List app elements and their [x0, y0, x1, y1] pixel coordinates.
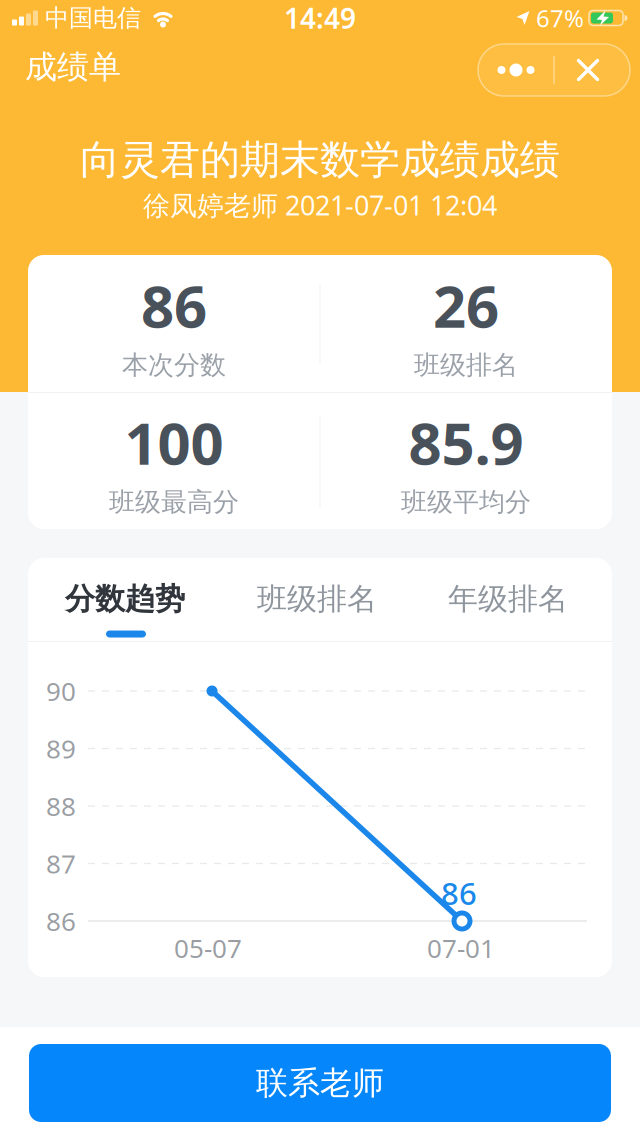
- staticText: 年级排名: [448, 580, 568, 618]
- staticText: 班级排名: [257, 580, 377, 618]
- staticText: 05-07: [174, 930, 242, 966]
- staticText: 14:49: [284, 0, 356, 37]
- staticText: 班级平均分: [401, 486, 531, 518]
- button[interactable]: 年级排名: [433, 559, 583, 639]
- staticText: 分数趋势: [65, 580, 185, 618]
- staticText: 89: [46, 731, 76, 766]
- button[interactable]: 分数趋势: [50, 559, 200, 639]
- staticText: 100: [124, 403, 223, 482]
- staticText: 徐凤婷老师 2021-07-01 12:04: [143, 187, 497, 223]
- staticText: 86: [141, 266, 207, 345]
- staticText: 26: [433, 266, 499, 345]
- staticText: 07-01: [427, 930, 495, 966]
- staticText: 88: [46, 788, 76, 824]
- button[interactable]: 班级排名: [242, 559, 392, 639]
- staticText: 中国电信: [45, 3, 141, 33]
- staticText: 联系老师: [256, 1063, 384, 1103]
- staticText: 87: [46, 846, 76, 881]
- staticText: 86: [46, 903, 76, 939]
- button[interactable]: 联系老师: [29, 1044, 611, 1122]
- staticText: 班级最高分: [109, 486, 239, 518]
- button[interactable]: [550, 44, 626, 96]
- staticText: 向灵君的期末数学成绩成绩: [80, 135, 560, 185]
- button[interactable]: [478, 44, 554, 96]
- staticText: 90: [46, 673, 76, 709]
- staticText: 86: [441, 872, 477, 914]
- staticText: 成绩单: [25, 47, 121, 87]
- staticText: 67%: [536, 2, 584, 34]
- staticText: 班级排名: [414, 349, 518, 381]
- staticText: 85.9: [408, 403, 523, 482]
- staticText: 本次分数: [122, 349, 226, 381]
